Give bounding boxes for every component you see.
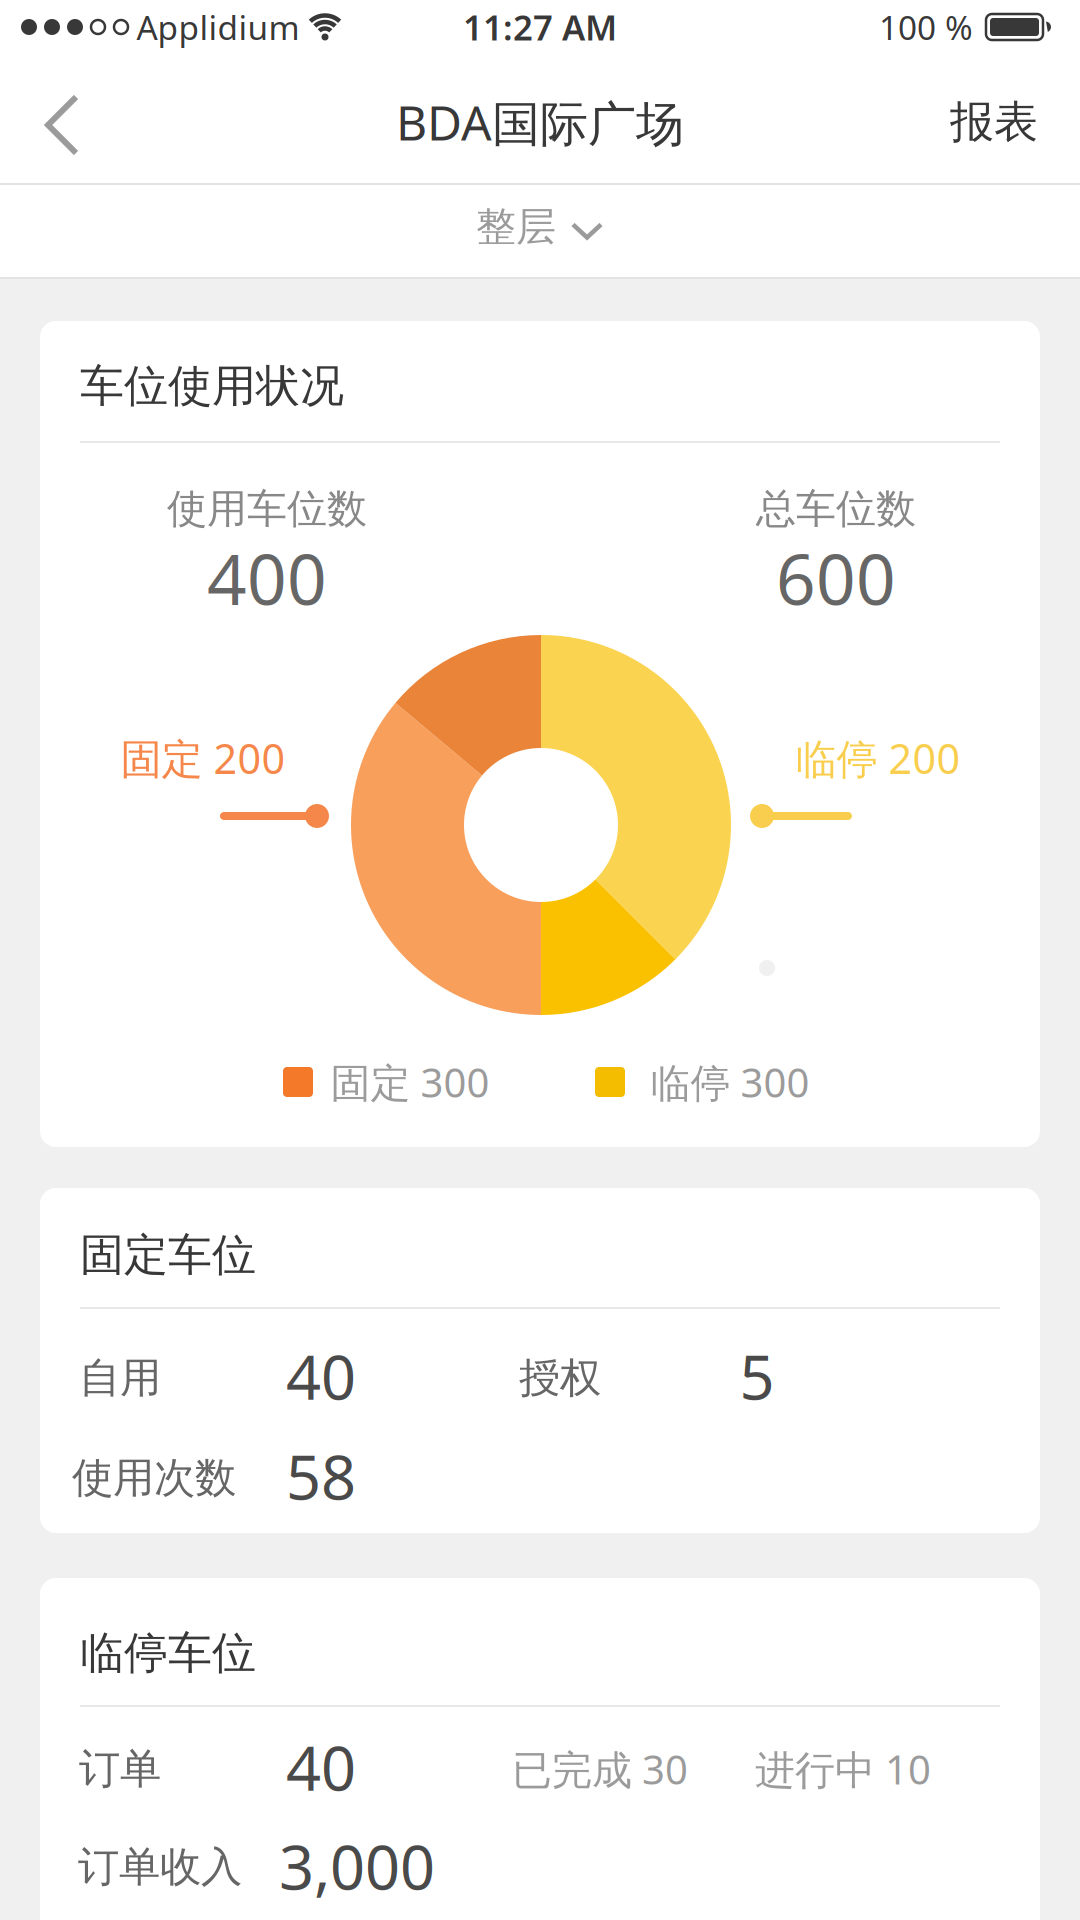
staticText: 临停 200 <box>795 731 960 785</box>
staticText: 已完成 30 <box>512 1742 688 1795</box>
staticText: 600 <box>776 532 896 624</box>
staticText: 订单收入 <box>78 1842 242 1892</box>
staticText: 58 <box>286 1435 356 1517</box>
staticText: 报表 <box>950 95 1038 149</box>
staticText: 使用次数 <box>72 1453 236 1503</box>
staticText: 总车位数 <box>756 484 916 533</box>
button[interactable]: 报表 <box>950 95 1038 149</box>
staticText: 订单 <box>79 1744 161 1794</box>
staticText: 车位使用状况 <box>80 359 344 413</box>
staticText: 进行中 10 <box>755 1742 931 1795</box>
staticText: BDA国际广场 <box>396 90 684 154</box>
staticText: 固定 200 <box>120 731 285 785</box>
staticText: Applidium <box>136 5 299 49</box>
staticText: 自用 <box>79 1353 161 1403</box>
staticText: 40 <box>286 1726 356 1808</box>
staticText: 100 % <box>879 5 973 49</box>
staticText: 400 <box>207 532 327 624</box>
staticText: 授权 <box>519 1353 601 1403</box>
staticText: 整层 <box>476 202 556 251</box>
staticText: 固定车位 <box>80 1228 256 1282</box>
staticText: 使用车位数 <box>167 484 367 533</box>
staticText: 临停 300 <box>650 1055 809 1108</box>
staticText: 5 <box>739 1335 774 1417</box>
button[interactable]: Back <box>36 83 96 167</box>
button[interactable]: 整层 <box>0 185 1080 277</box>
staticText: 11:27 AM <box>463 4 617 50</box>
staticText: 临停车位 <box>80 1626 256 1680</box>
staticText: 3,000 <box>279 1825 435 1907</box>
staticText: 40 <box>286 1335 356 1417</box>
staticText: 固定 300 <box>330 1055 489 1108</box>
